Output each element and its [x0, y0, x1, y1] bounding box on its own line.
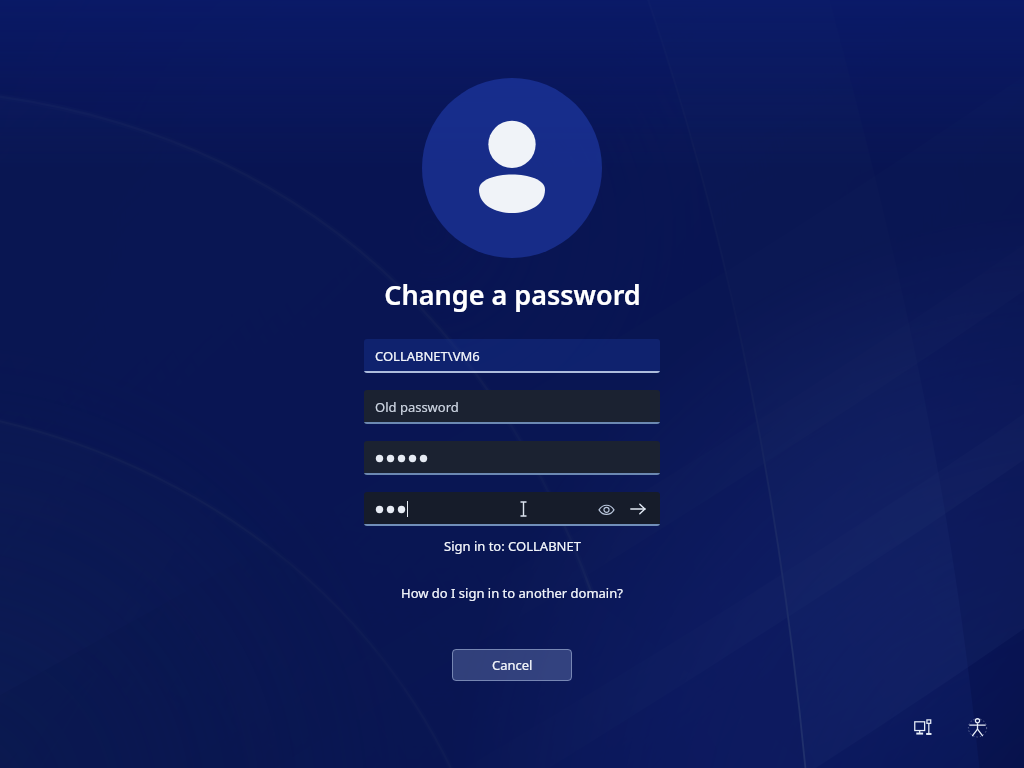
button[interactable]: Old password	[364, 390, 660, 424]
staticText: How do I sign in to another domain?	[401, 584, 623, 602]
button[interactable]: Show password	[592, 495, 620, 523]
button[interactable]	[364, 441, 660, 475]
button[interactable]: Network	[906, 710, 940, 744]
staticText: Cancel	[492, 656, 533, 674]
button[interactable]: User account picture	[422, 78, 602, 258]
staticText: COLLABNET\VM6	[375, 347, 480, 365]
button[interactable]: Submit	[624, 495, 652, 523]
staticText: Old password	[375, 398, 459, 416]
button[interactable]: How do I sign in to another domain?	[395, 581, 629, 605]
button[interactable]: Ease of access	[960, 710, 994, 744]
staticText: Sign in to: COLLABNET	[444, 537, 581, 555]
button[interactable]: COLLABNET\VM6	[364, 339, 660, 373]
button[interactable]: Show password	[364, 492, 660, 526]
button[interactable]: Cancel	[452, 649, 572, 681]
staticText: Change a password	[384, 276, 641, 313]
